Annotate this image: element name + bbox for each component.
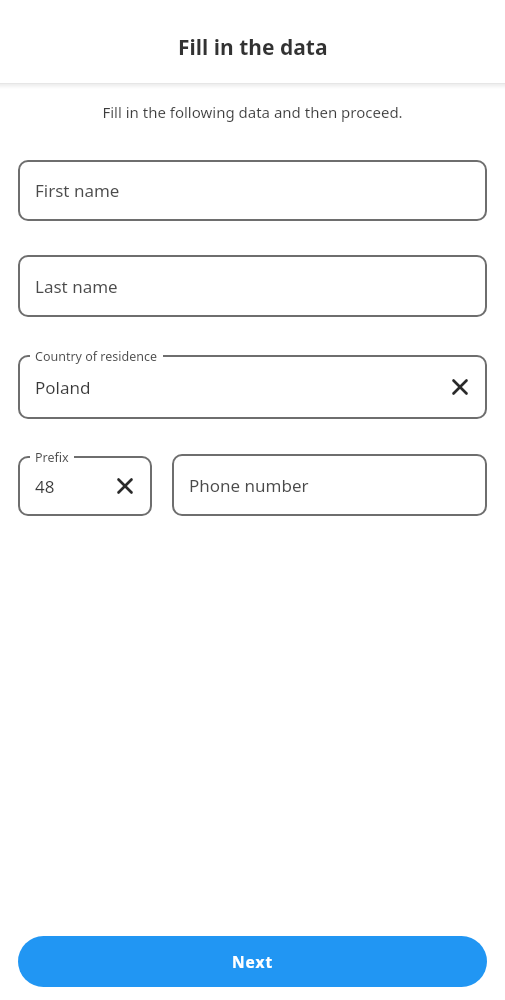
staticText: Country of residence <box>35 348 158 365</box>
button[interactable] <box>117 478 133 494</box>
staticText: Fill in the following data and then proc… <box>0 102 505 122</box>
staticText: Phone number <box>189 474 309 497</box>
button[interactable]: Next <box>18 936 487 987</box>
staticText: 48 <box>35 475 55 498</box>
staticText: Last name <box>35 275 118 298</box>
button[interactable] <box>452 379 468 395</box>
staticText: First name <box>35 179 120 202</box>
staticText: Poland <box>35 376 91 399</box>
button[interactable]: 48 <box>18 456 152 516</box>
button[interactable]: Last name <box>18 255 487 317</box>
staticText: Prefix <box>35 449 69 466</box>
button[interactable]: Phone number <box>172 454 487 516</box>
staticText: Fill in the data <box>178 33 328 62</box>
button[interactable]: Poland <box>18 355 487 419</box>
button[interactable]: First name <box>18 160 487 221</box>
staticText: Next <box>232 951 274 972</box>
